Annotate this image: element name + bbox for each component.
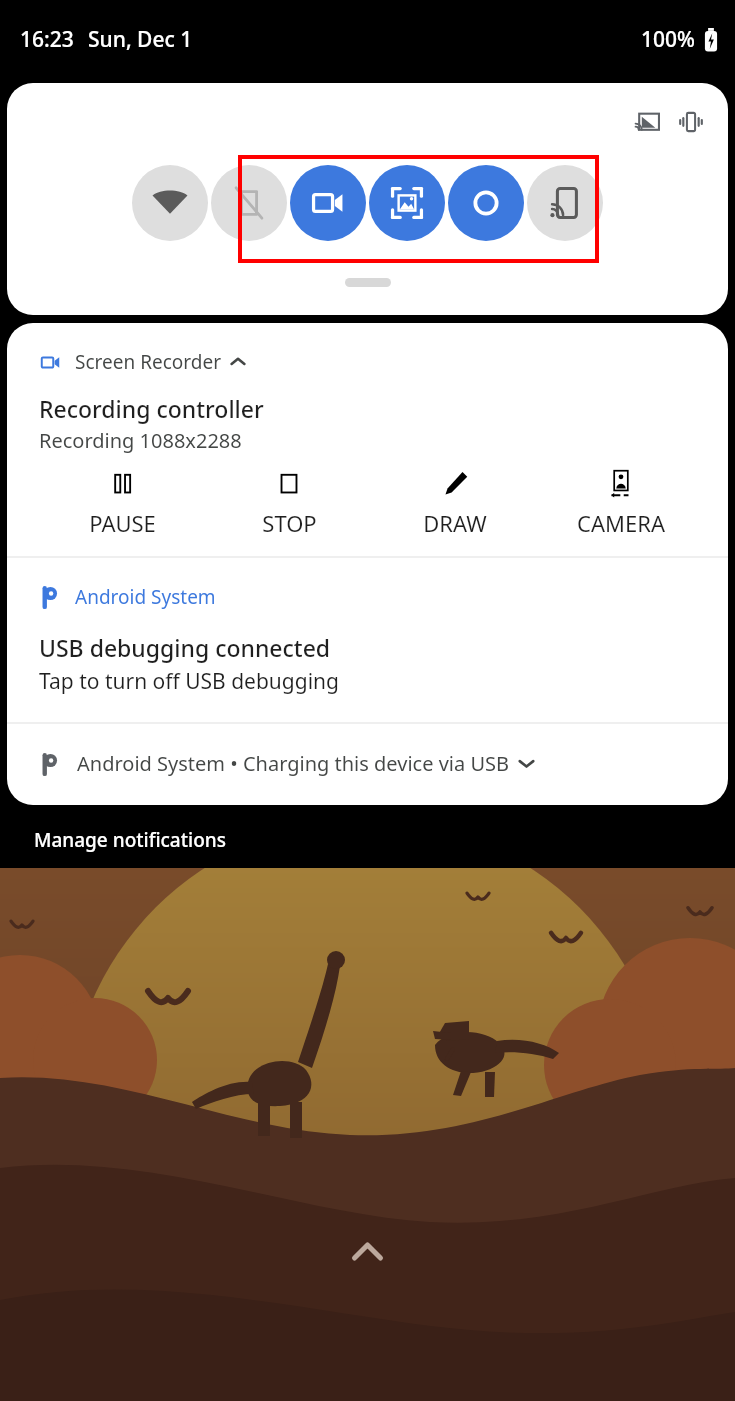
staticText: PAUSE <box>89 508 156 538</box>
button[interactable]: Android System <box>7 558 728 722</box>
button[interactable]: Do not disturb <box>211 165 287 241</box>
button[interactable]: Screen Recorder <box>7 323 728 556</box>
staticText: 100% <box>641 25 695 54</box>
button[interactable]: CAMERA <box>538 464 704 542</box>
button[interactable]: Android System • Charging this device vi… <box>7 724 728 805</box>
staticText: DRAW <box>423 508 487 538</box>
button[interactable]: Ringer vibrate <box>674 105 708 139</box>
staticText: Sun, Dec 1 <box>88 25 193 54</box>
staticText: CAMERA <box>577 508 665 538</box>
staticText: 16:23 <box>20 25 74 54</box>
button[interactable]: Wi-Fi <box>132 165 208 241</box>
button[interactable]: Screen cast <box>527 165 603 241</box>
staticText: Recording 1088x2288 <box>39 427 242 454</box>
staticText: USB debugging connected <box>39 632 331 663</box>
button[interactable]: Cast <box>630 105 664 139</box>
button[interactable]: Expand quick settings <box>345 278 391 287</box>
staticText: Android System • Charging this device vi… <box>77 750 509 777</box>
button[interactable]: PAUSE <box>39 464 206 542</box>
button[interactable]: Manage notifications <box>34 827 226 853</box>
staticText: Android System <box>75 584 216 610</box>
button[interactable]: DRAW <box>372 464 538 542</box>
staticText: Recording controller <box>39 393 264 424</box>
staticText: Screen Recorder <box>75 349 221 375</box>
button[interactable]: Screenshot <box>369 165 445 241</box>
staticText: Tap to turn off USB debugging <box>39 667 339 696</box>
button[interactable]: Screen record <box>290 165 366 241</box>
button[interactable]: STOP <box>206 464 372 542</box>
staticText: STOP <box>262 508 317 538</box>
button[interactable]: Record <box>448 165 524 241</box>
